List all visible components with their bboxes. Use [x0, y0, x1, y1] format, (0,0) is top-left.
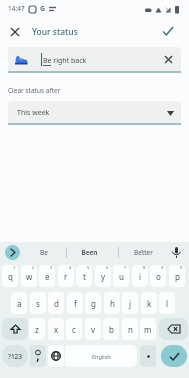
staticText: w [26, 271, 33, 282]
button[interactable]: w [21, 265, 37, 287]
button[interactable]: u [113, 265, 129, 287]
button[interactable] [161, 345, 187, 367]
staticText: u [119, 271, 124, 282]
staticText: j [129, 298, 132, 309]
staticText: p [175, 271, 180, 282]
button[interactable] [5, 245, 20, 260]
staticText: English [92, 353, 111, 360]
button[interactable]: Be right back [8, 47, 181, 73]
staticText: 5 [87, 265, 90, 270]
staticText: e [45, 271, 50, 282]
button[interactable]: t [76, 265, 92, 287]
button[interactable] [159, 22, 177, 40]
button[interactable]: l [159, 292, 175, 314]
button[interactable]: n [122, 318, 138, 340]
staticText: Be [40, 248, 48, 257]
staticText: g [91, 298, 96, 309]
staticText: 3 [50, 265, 53, 270]
staticText: 1 [13, 265, 16, 270]
staticText: Clear status after [8, 86, 61, 95]
button[interactable]: r [58, 265, 74, 287]
button[interactable]: q [2, 265, 18, 287]
staticText: n [128, 324, 133, 335]
button[interactable]: Been [70, 243, 109, 262]
button[interactable]: v [85, 318, 101, 340]
staticText: 6 [106, 265, 109, 270]
button[interactable] [140, 345, 156, 367]
button[interactable] [159, 50, 178, 69]
staticText: f [74, 298, 77, 309]
button[interactable] [168, 244, 185, 261]
button[interactable]: f [67, 292, 83, 314]
staticText: Your status [32, 26, 78, 38]
staticText: Be right back [43, 56, 87, 66]
button[interactable]: p [169, 265, 185, 287]
staticText: k [147, 298, 152, 309]
button[interactable]: a [11, 292, 27, 314]
staticText: 14:47 [8, 4, 25, 13]
staticText: l [166, 298, 169, 309]
button[interactable]: s [30, 292, 46, 314]
button[interactable] [2, 318, 28, 340]
staticText: r [64, 271, 68, 282]
button[interactable] [48, 345, 64, 367]
staticText: z [35, 324, 39, 335]
button[interactable]: z [29, 318, 45, 340]
staticText: c [72, 324, 76, 335]
button[interactable]: Be [27, 243, 61, 262]
staticText: y [101, 271, 106, 282]
button[interactable]: m [140, 318, 156, 340]
staticText: a [17, 298, 22, 309]
button[interactable]: English [65, 345, 137, 367]
staticText: t [83, 271, 86, 282]
button[interactable]: g [85, 292, 101, 314]
button[interactable] [159, 318, 188, 340]
staticText: b [109, 324, 114, 335]
button[interactable] [6, 23, 23, 40]
staticText: This week [17, 108, 50, 118]
staticText: d [54, 298, 59, 309]
button[interactable]: k [141, 292, 157, 314]
staticText: G [40, 4, 46, 14]
staticText: 4 [69, 265, 72, 270]
staticText: Better [134, 248, 153, 257]
button[interactable]: d [48, 292, 64, 314]
staticText: 7 [124, 265, 127, 270]
staticText: s [36, 298, 40, 309]
staticText: 0 [180, 265, 183, 270]
staticText: i [139, 271, 142, 282]
button[interactable] [30, 345, 46, 367]
button[interactable]: Better [122, 243, 164, 262]
button[interactable]: e [39, 265, 55, 287]
button[interactable]: x [48, 318, 64, 340]
staticText: m [144, 324, 152, 335]
staticText: h [110, 298, 115, 309]
staticText: 9 [161, 265, 164, 270]
staticText: q [8, 271, 13, 282]
staticText: 2 [32, 265, 35, 270]
button[interactable]: o [150, 265, 166, 287]
button[interactable]: i [132, 265, 148, 287]
button[interactable]: c [66, 318, 82, 340]
staticText: 8 [143, 265, 146, 270]
button[interactable]: y [95, 265, 111, 287]
staticText: ?123 [8, 352, 23, 361]
button[interactable]: b [103, 318, 119, 340]
staticText: x [54, 324, 59, 335]
button[interactable]: h [104, 292, 120, 314]
staticText: v [91, 324, 96, 335]
button[interactable]: This week [8, 101, 181, 125]
button[interactable]: j [122, 292, 138, 314]
staticText: Been [81, 248, 98, 257]
button[interactable]: ?123 [2, 345, 28, 367]
staticText: o [156, 271, 161, 282]
